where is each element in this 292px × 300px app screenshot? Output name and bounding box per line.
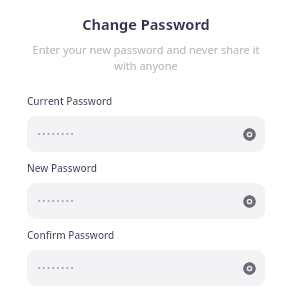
staticText: Current Password [27, 94, 113, 108]
staticText: Confirm Password [27, 228, 115, 242]
button[interactable]: Show password [27, 116, 265, 152]
button[interactable]: Show password [243, 128, 256, 141]
button[interactable]: Show password [243, 262, 256, 275]
staticText: Change Password [0, 14, 292, 34]
button[interactable]: Show password [27, 250, 265, 286]
staticText: Enter your new password and never share … [21, 42, 271, 74]
button[interactable]: Show password [243, 195, 256, 208]
button[interactable]: Show password [27, 183, 265, 219]
staticText: New Password [27, 161, 97, 175]
